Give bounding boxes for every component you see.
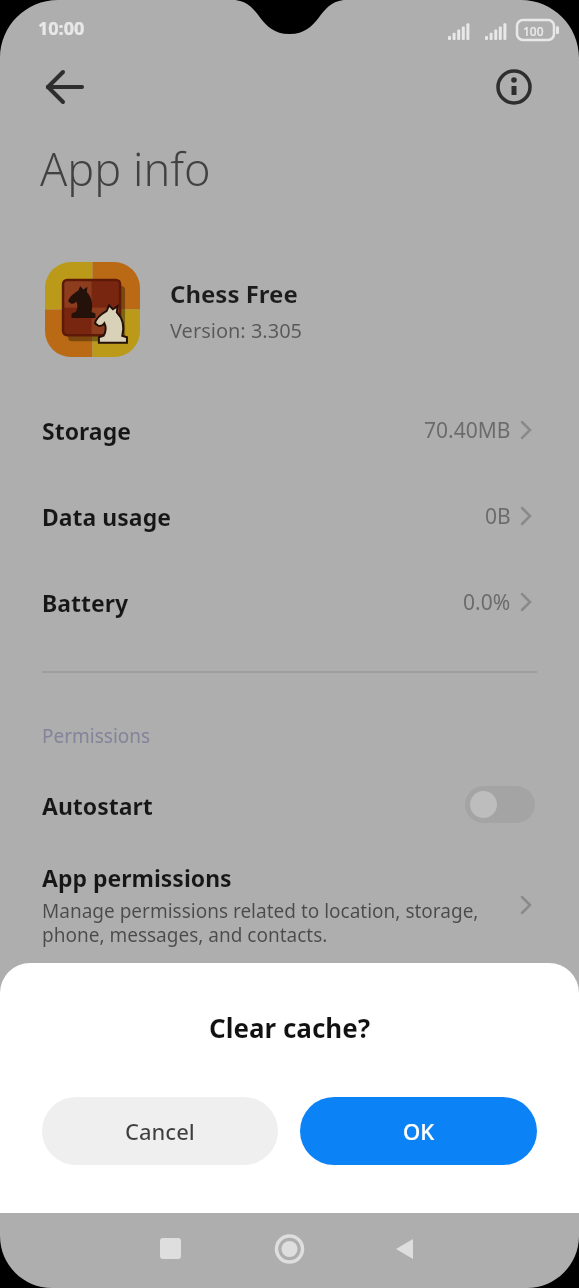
staticText: Autostart (42, 790, 153, 821)
button[interactable]: OK (300, 1097, 537, 1165)
button[interactable] (41, 63, 89, 111)
staticText: 70.40MB (424, 416, 511, 445)
staticText: Cancel (125, 1116, 195, 1146)
staticText: App permissions (42, 862, 232, 893)
staticText: 0B (485, 502, 511, 531)
staticText: 0.0% (463, 588, 511, 617)
button[interactable]: Battery (0, 567, 579, 637)
button[interactable]: Autostart (0, 770, 579, 840)
staticText: Battery (42, 587, 129, 618)
button[interactable] (375, 1218, 437, 1280)
staticText: Version: 3.305 (170, 317, 303, 344)
button[interactable]: Data usage (0, 481, 579, 551)
staticText: App info (40, 138, 211, 199)
staticText: Storage (42, 415, 131, 446)
button[interactable]: Cancel (42, 1097, 278, 1165)
staticText: Chess Free (170, 277, 298, 310)
button[interactable] (45, 262, 140, 357)
staticText: Clear cache? (209, 1010, 371, 1045)
button[interactable] (490, 63, 538, 111)
button[interactable] (258, 1218, 320, 1280)
staticText: Manage permissions related to location, … (42, 898, 479, 947)
button[interactable]: App permissions (0, 850, 579, 960)
staticText: Permissions (42, 723, 151, 749)
staticText: 100 (523, 23, 544, 39)
button[interactable] (140, 1218, 202, 1280)
button[interactable]: Storage (0, 395, 579, 465)
button[interactable] (465, 786, 535, 823)
staticText: Data usage (42, 501, 171, 532)
staticText: 10:00 (38, 16, 85, 41)
staticText: OK (403, 1116, 435, 1146)
